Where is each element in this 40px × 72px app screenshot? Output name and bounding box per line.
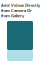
staticText: Add Videos Directly from Camera Or from …: [1, 2, 40, 18]
